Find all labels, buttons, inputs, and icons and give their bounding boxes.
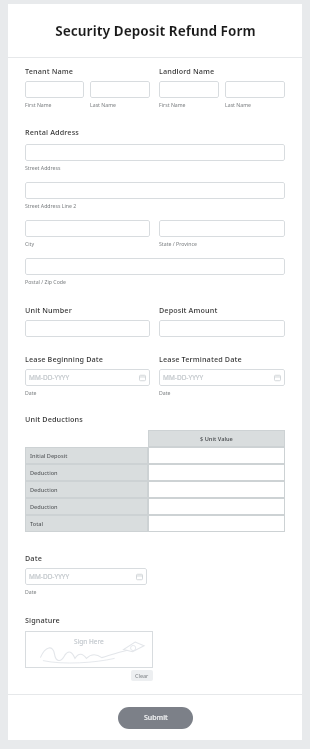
staticText: Deduction [30, 503, 58, 511]
button[interactable]: MM-DD-YYYY [159, 369, 285, 386]
button[interactable] [148, 447, 285, 464]
button[interactable] [90, 81, 150, 98]
staticText: $ Unit Value [200, 435, 233, 443]
staticText: Unit Deductions [25, 414, 83, 424]
staticText: MM-DD-YYYY [29, 572, 70, 581]
staticText: MM-DD-YYYY [29, 373, 70, 382]
staticText: Date [25, 553, 42, 563]
staticText: State / Province [159, 240, 197, 247]
button[interactable] [25, 144, 285, 161]
button[interactable] [148, 515, 285, 532]
staticText: Lease Beginning Date [25, 354, 104, 364]
button[interactable]: Signature pad, sign here [25, 631, 153, 668]
staticText: Postal / Zip Code [25, 278, 66, 285]
staticText: Rental Address [25, 127, 79, 137]
button[interactable] [148, 464, 285, 481]
button[interactable] [225, 81, 285, 98]
staticText: First Name [159, 101, 186, 108]
button[interactable] [148, 481, 285, 498]
staticText: Sign Here [74, 637, 104, 646]
staticText: Last Name [225, 101, 251, 108]
staticText: Date [25, 389, 37, 396]
staticText: First Name [25, 101, 52, 108]
staticText: Submit [144, 713, 168, 723]
staticText: Last Name [90, 101, 116, 108]
staticText: Lease Terminated Date [159, 354, 242, 364]
button[interactable] [25, 320, 150, 337]
button[interactable] [159, 220, 285, 237]
staticText: City [25, 240, 35, 247]
button[interactable] [148, 498, 285, 515]
staticText: Street Address [25, 164, 61, 171]
button[interactable] [25, 220, 150, 237]
staticText: Deduction [30, 469, 58, 477]
staticText: Date [25, 588, 37, 595]
staticText: Date [159, 389, 171, 396]
staticText: Clear [135, 672, 149, 679]
button[interactable] [159, 320, 285, 337]
staticText: Tenant Name [25, 66, 74, 76]
button[interactable] [25, 258, 285, 275]
button[interactable]: Submit [118, 707, 193, 729]
staticText: Deposit Amount [159, 305, 218, 315]
button[interactable]: MM-DD-YYYY [25, 568, 147, 585]
staticText: Deduction [30, 486, 58, 494]
button[interactable] [25, 182, 285, 199]
staticText: Initial Deposit [30, 452, 68, 460]
staticText: Unit Number [25, 305, 72, 315]
button[interactable]: Clear [131, 670, 153, 681]
button[interactable] [159, 81, 219, 98]
staticText: Landlord Name [159, 66, 215, 76]
staticText: Signature [25, 615, 60, 625]
button[interactable] [25, 81, 84, 98]
staticText: Street Address Line 2 [25, 202, 77, 209]
staticText: Security Deposit Refund Form [55, 22, 256, 40]
staticText: MM-DD-YYYY [163, 373, 204, 382]
button[interactable]: MM-DD-YYYY [25, 369, 150, 386]
staticText: Total [30, 520, 44, 528]
